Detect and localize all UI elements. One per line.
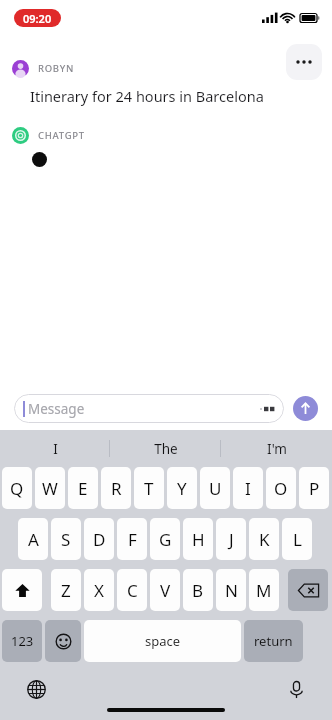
button[interactable]: S [51, 518, 81, 560]
button[interactable]: key [45, 620, 81, 662]
button[interactable]: E [68, 467, 98, 509]
button[interactable]: D [84, 518, 114, 560]
staticText: return [254, 632, 293, 650]
button[interactable]: U [200, 467, 230, 509]
staticText: Message [28, 400, 259, 418]
button[interactable]: I [0, 430, 110, 467]
staticText: G [159, 528, 172, 551]
button[interactable]: H [183, 518, 213, 560]
staticText: L [293, 528, 302, 551]
button[interactable]: More options [286, 44, 322, 80]
button[interactable]: Dictate [282, 675, 310, 703]
staticText: P [309, 477, 320, 500]
staticText: H [192, 528, 205, 551]
staticText: I [245, 477, 251, 500]
staticText: W [42, 477, 58, 500]
button[interactable]: C [117, 569, 147, 611]
staticText: S [61, 528, 71, 551]
button[interactable]: W [35, 467, 65, 509]
staticText: R [111, 477, 122, 500]
staticText: U [209, 477, 222, 500]
staticText: B [192, 579, 204, 602]
button[interactable]: key [288, 569, 328, 611]
staticText: space [145, 632, 181, 650]
button[interactable]: G [150, 518, 180, 560]
button[interactable]: 123 [2, 620, 42, 662]
button[interactable]: Y [167, 467, 197, 509]
staticText: D [93, 528, 106, 551]
button[interactable]: F [117, 518, 147, 560]
button[interactable]: B [183, 569, 213, 611]
staticText: 123 [11, 632, 34, 650]
button[interactable]: Q [2, 467, 32, 509]
button[interactable]: I [233, 467, 263, 509]
staticText: A [28, 528, 39, 551]
button[interactable]: T [134, 467, 164, 509]
button[interactable]: R [101, 467, 131, 509]
staticText: J [229, 528, 234, 551]
button[interactable]: Send [293, 396, 318, 421]
button[interactable]: space [84, 620, 241, 662]
staticText: F [128, 528, 137, 551]
button[interactable]: return [244, 620, 303, 662]
staticText: 09:20 [23, 11, 52, 26]
staticText: Y [177, 477, 187, 500]
button[interactable]: M [249, 569, 279, 611]
button[interactable]: A [18, 518, 48, 560]
button[interactable]: P [299, 467, 329, 509]
button[interactable]: J [216, 518, 246, 560]
button[interactable]: L [282, 518, 312, 560]
button[interactable]: V [150, 569, 180, 611]
staticText: V [160, 579, 171, 602]
staticText: CHATGPT [38, 129, 85, 142]
staticText: Itinerary for 24 hours in Barcelona [30, 86, 264, 106]
staticText: I [53, 440, 58, 458]
button[interactable]: I'm [221, 430, 332, 467]
button[interactable]: key [2, 569, 42, 611]
button[interactable]: N [216, 569, 246, 611]
staticText: X [94, 579, 104, 602]
staticText: C [127, 579, 138, 602]
staticText: O [274, 477, 288, 500]
staticText: The [154, 440, 178, 458]
staticText: Z [61, 579, 71, 602]
staticText: I'm [267, 440, 287, 458]
button[interactable]: X [84, 569, 114, 611]
staticText: E [78, 477, 88, 500]
button[interactable]: Change keyboard language [22, 675, 50, 703]
staticText: N [225, 579, 238, 602]
staticText: ROBYN [38, 62, 75, 75]
staticText: Q [10, 477, 24, 500]
button[interactable]: The [110, 430, 221, 467]
staticText: K [259, 528, 270, 551]
button[interactable]: Z [51, 569, 81, 611]
button[interactable]: K [249, 518, 279, 560]
staticText: T [144, 477, 154, 500]
staticText: M [256, 579, 272, 602]
button[interactable]: O [266, 467, 296, 509]
button[interactable]: Message [14, 394, 284, 423]
